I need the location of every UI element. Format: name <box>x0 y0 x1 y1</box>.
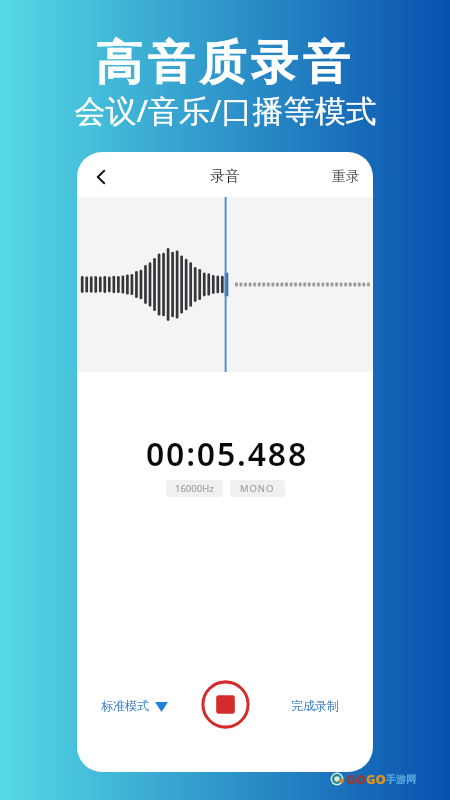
staticText: 高音质录音 <box>93 34 352 93</box>
staticText: GO <box>346 770 366 788</box>
button[interactable]: MONO <box>230 480 285 497</box>
staticText: GO <box>366 770 386 788</box>
button[interactable]: 重录 <box>324 160 373 190</box>
staticText: 手游网 <box>386 773 416 786</box>
staticText: 会议/音乐/口播等模式 <box>74 89 377 131</box>
staticText: 16000Hz <box>175 482 214 495</box>
staticText: 重录 <box>332 168 360 186</box>
staticText: 完成录制 <box>291 698 339 713</box>
staticText: 录音 <box>210 167 240 186</box>
button[interactable]: Stop recording <box>201 680 250 729</box>
button[interactable]: Back <box>87 163 115 191</box>
staticText: 00:05.488 <box>146 432 308 476</box>
button[interactable]: 完成录制 <box>285 692 345 719</box>
staticText: 标准模式 <box>101 698 149 713</box>
staticText: MONO <box>240 482 275 495</box>
button[interactable]: 16000Hz <box>166 480 223 497</box>
button[interactable]: 标准模式 <box>95 692 174 719</box>
